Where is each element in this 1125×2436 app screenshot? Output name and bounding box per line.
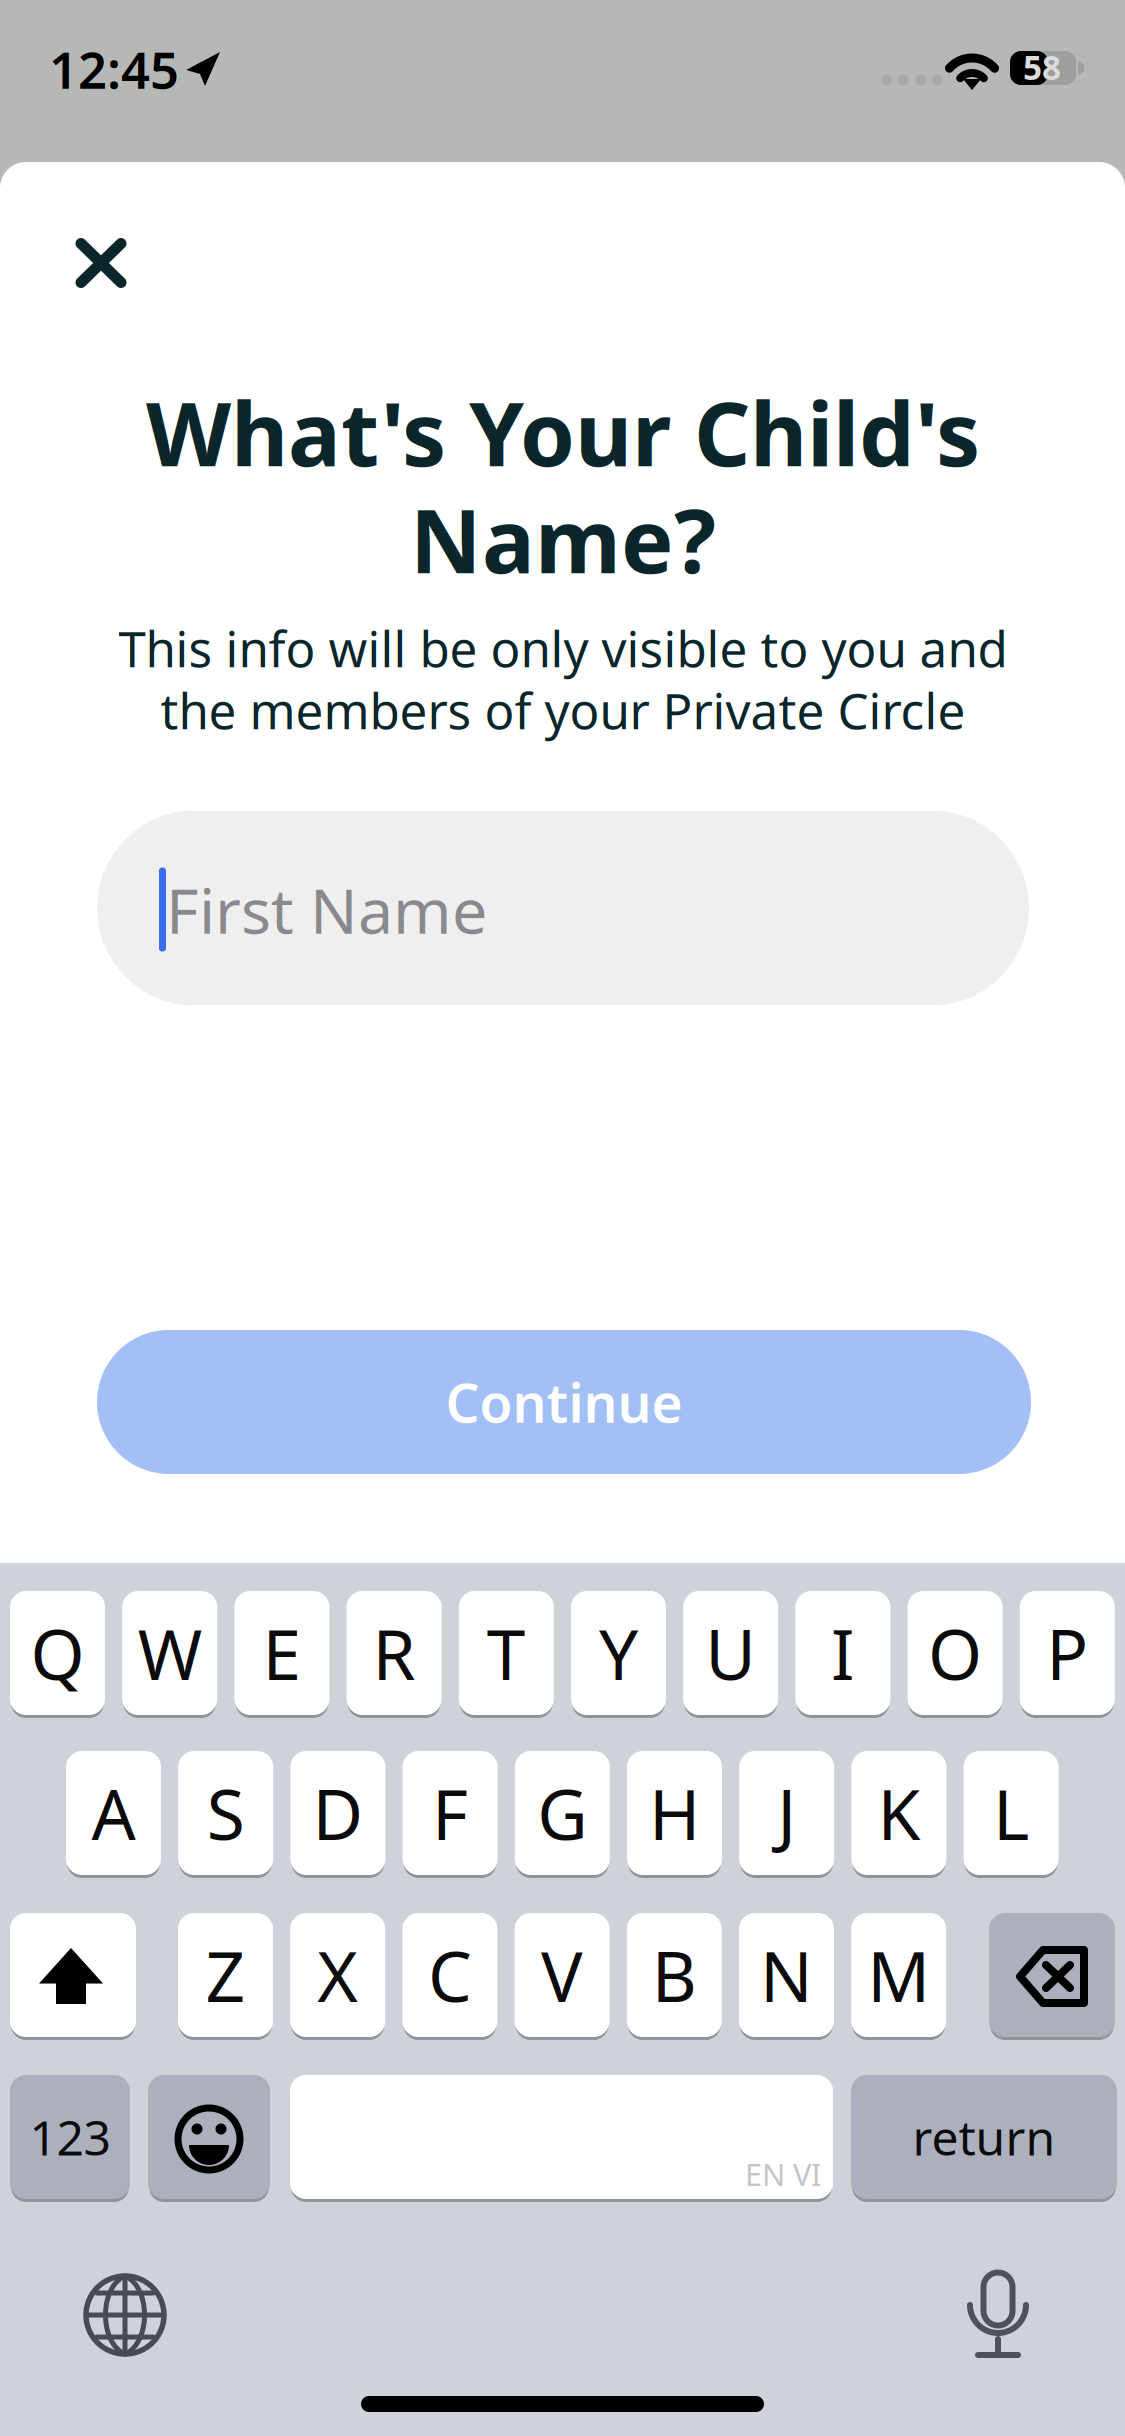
- staticText: R: [373, 1607, 416, 1699]
- staticText: V: [541, 1929, 583, 2021]
- staticText: 123: [29, 2105, 110, 2169]
- staticText: D: [312, 1767, 363, 1859]
- button[interactable]: E: [234, 1591, 329, 1719]
- button[interactable]: return: [851, 2075, 1117, 2203]
- button[interactable]: I: [795, 1591, 890, 1719]
- staticText: Q: [30, 1607, 84, 1699]
- staticText: 12:45: [49, 35, 179, 103]
- staticText: G: [537, 1767, 587, 1859]
- staticText: 58: [1023, 45, 1061, 89]
- button[interactable]: Emoji: [148, 2075, 270, 2203]
- staticText: Z: [205, 1929, 245, 2021]
- staticText: return: [912, 2105, 1055, 2169]
- staticText: Continue: [445, 1367, 682, 1437]
- staticText: H: [649, 1767, 700, 1859]
- staticText: the members of your Private Circle: [160, 677, 965, 743]
- staticText: L: [993, 1767, 1029, 1859]
- staticText: U: [705, 1607, 756, 1699]
- staticText: This info will be only visible to you an…: [118, 615, 1007, 681]
- button[interactable]: A: [66, 1751, 161, 1879]
- button[interactable]: D: [290, 1751, 385, 1879]
- button[interactable]: N: [739, 1913, 834, 2041]
- button[interactable]: B: [627, 1913, 722, 2041]
- button[interactable]: M: [851, 1913, 946, 2041]
- button[interactable]: Next keyboard: [65, 2255, 185, 2375]
- staticText: K: [877, 1767, 920, 1859]
- button[interactable]: Y: [571, 1591, 666, 1719]
- button[interactable]: K: [851, 1751, 946, 1879]
- staticText: O: [928, 1607, 982, 1699]
- staticText: I: [831, 1607, 855, 1699]
- button[interactable]: Space: [290, 2075, 833, 2203]
- staticText: P: [1046, 1607, 1088, 1699]
- button[interactable]: V: [515, 1913, 610, 2041]
- button[interactable]: L: [964, 1751, 1059, 1879]
- button[interactable]: J: [739, 1751, 834, 1879]
- staticText: S: [207, 1767, 245, 1859]
- button[interactable]: G: [515, 1751, 610, 1879]
- staticText: EN VI: [745, 2154, 821, 2194]
- staticText: C: [428, 1929, 472, 2021]
- button[interactable]: Continue: [97, 1330, 1031, 1474]
- button[interactable]: T: [459, 1591, 554, 1719]
- button[interactable]: W: [122, 1591, 217, 1719]
- staticText: W: [138, 1607, 202, 1699]
- staticText: T: [487, 1607, 526, 1699]
- staticText: What's Your Child's: [146, 374, 980, 490]
- staticText: A: [91, 1767, 135, 1859]
- button[interactable]: Numbers: [10, 2075, 130, 2203]
- button[interactable]: Z: [178, 1913, 273, 2041]
- staticText: J: [777, 1767, 796, 1859]
- button[interactable]: Delete: [989, 1913, 1115, 2041]
- staticText: M: [867, 1929, 930, 2021]
- button[interactable]: H: [627, 1751, 722, 1879]
- button[interactable]: X: [290, 1913, 385, 2041]
- staticText: First Name: [166, 868, 487, 951]
- button[interactable]: U: [683, 1591, 778, 1719]
- staticText: Name?: [410, 481, 716, 597]
- button[interactable]: C: [402, 1913, 497, 2041]
- button[interactable]: O: [908, 1591, 1003, 1719]
- staticText: Y: [599, 1607, 638, 1699]
- button[interactable]: Close: [41, 203, 161, 323]
- button[interactable]: Dictate: [937, 2255, 1057, 2375]
- button[interactable]: First Name: [97, 810, 1029, 1005]
- staticText: E: [262, 1607, 301, 1699]
- button[interactable]: S: [178, 1751, 273, 1879]
- staticText: F: [432, 1767, 468, 1859]
- button[interactable]: R: [347, 1591, 442, 1719]
- button[interactable]: Q: [10, 1591, 105, 1719]
- staticText: N: [760, 1929, 813, 2021]
- button[interactable]: F: [403, 1751, 498, 1879]
- button[interactable]: P: [1020, 1591, 1115, 1719]
- button[interactable]: Shift: [10, 1913, 136, 2041]
- staticText: B: [652, 1929, 697, 2021]
- staticText: X: [317, 1929, 358, 2021]
